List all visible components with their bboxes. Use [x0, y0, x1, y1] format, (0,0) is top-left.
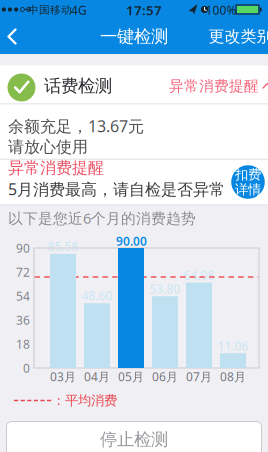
- staticText: 4G: [71, 2, 87, 18]
- staticText: 36: [16, 312, 30, 328]
- button[interactable]: 异常消费提醒: [171, 69, 268, 103]
- staticText: 更改类别: [208, 27, 268, 46]
- staticText: 54: [16, 288, 30, 304]
- staticText: 扣费: [235, 166, 261, 183]
- staticText: 04月: [84, 368, 110, 384]
- staticText: 异常消费提醒: [8, 158, 104, 178]
- staticText: 5月消费最高，请自检是否异常: [8, 178, 225, 200]
- staticText: 05月: [118, 368, 144, 384]
- button[interactable]: [0, 19, 26, 53]
- staticText: 话费检测: [44, 75, 112, 97]
- button[interactable]: 扣费: [231, 165, 265, 199]
- staticText: 48.60: [81, 288, 112, 304]
- staticText: 余额充足，13.67元: [8, 115, 144, 137]
- staticText: 中国移动: [28, 3, 72, 16]
- staticText: 08月: [220, 368, 246, 384]
- staticText: 详情: [235, 181, 261, 198]
- staticText: 0: [23, 360, 30, 376]
- staticText: 90: [16, 240, 30, 256]
- staticText: 以下是您近6个月的消费趋势: [8, 208, 196, 228]
- staticText: 06月: [152, 368, 178, 384]
- staticText: 11.06: [217, 338, 248, 354]
- staticText: 03月: [50, 368, 76, 384]
- staticText: 72: [16, 264, 30, 280]
- staticText: 一键检测: [100, 26, 168, 47]
- staticText: 64.08: [183, 267, 214, 283]
- staticText: 请放心使用: [8, 137, 88, 157]
- staticText: 100%: [205, 2, 236, 18]
- staticText: 90.00: [116, 233, 147, 249]
- staticText: 18: [16, 336, 30, 352]
- staticText: ：平均消费: [52, 392, 117, 409]
- staticText: 07月: [186, 368, 212, 384]
- button[interactable]: 更改类别: [209, 19, 268, 53]
- staticText: 停止检测: [100, 429, 168, 450]
- staticText: 异常消费提醒: [169, 77, 259, 95]
- staticText: 17:57: [126, 1, 162, 19]
- button[interactable]: 停止检测: [6, 421, 262, 452]
- staticText: 85.58: [47, 238, 78, 254]
- staticText: 53.80: [149, 281, 180, 297]
